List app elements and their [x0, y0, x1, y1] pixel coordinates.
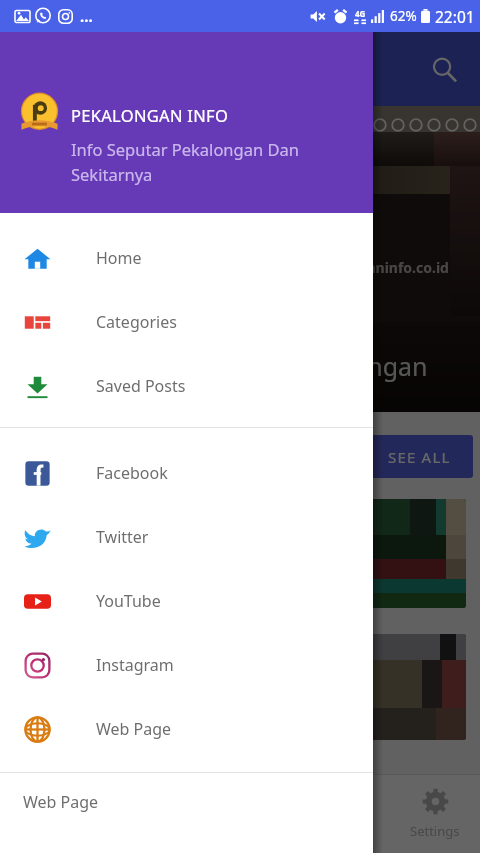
staticText: Facebook: [96, 462, 168, 484]
staticText: ...: [80, 6, 93, 26]
button[interactable]: YouTube: [0, 569, 373, 633]
staticText: Web Page: [23, 791, 99, 813]
staticText: YouTube: [96, 590, 161, 612]
button[interactable]: SEE ALL: [366, 435, 473, 478]
button[interactable]: Categories: [0, 290, 373, 354]
staticText: Saved Posts: [96, 375, 186, 397]
button[interactable]: Web Page: [0, 773, 373, 831]
staticText: Instagram: [96, 654, 174, 676]
staticText: SEE ALL: [388, 447, 451, 467]
button[interactable]: Twitter: [0, 505, 373, 569]
button[interactable]: Search: [422, 47, 466, 91]
staticText: Web Page: [96, 718, 172, 740]
staticText: Home: [96, 247, 142, 269]
staticText: Info Seputar Pekalongan Dan Sekitarnya: [71, 138, 311, 185]
button[interactable]: Home: [0, 226, 373, 290]
staticText: Pekalongan: [289, 349, 428, 383]
staticText: Twitter: [96, 526, 149, 548]
staticText: pekalonganinfo.co.id: [302, 258, 449, 277]
button[interactable]: Facebook: [0, 441, 373, 505]
button[interactable]: [10, 634, 466, 740]
button[interactable]: Saved Posts: [0, 354, 373, 418]
button[interactable]: [10, 499, 466, 608]
staticText: 4G: [355, 8, 366, 19]
button[interactable]: Web Page: [0, 697, 373, 761]
staticText: PEKALONGAN INFO: [71, 104, 229, 126]
staticText: 62%: [390, 7, 417, 25]
button[interactable]: Instagram: [0, 633, 373, 697]
staticText: 22:01: [435, 6, 475, 27]
staticText: Categories: [96, 311, 177, 333]
button[interactable]: PEKALONGAN INFO: [0, 32, 373, 213]
staticText: Settings: [410, 822, 460, 840]
button[interactable]: Settings: [410, 788, 460, 840]
